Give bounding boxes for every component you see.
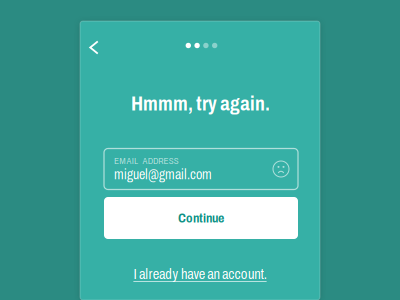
staticText: Continue	[178, 211, 224, 225]
staticText: Hmmm, try again.	[131, 92, 270, 115]
staticText: I already have an account.	[133, 266, 267, 282]
staticText: EMAIL ADDRESS	[114, 156, 179, 166]
staticText: miguel@gmail.com	[114, 167, 212, 182]
button[interactable]: Continue	[104, 197, 298, 239]
button[interactable]: Back	[80, 33, 108, 61]
button[interactable]: EMAIL ADDRESS	[104, 148, 298, 189]
button[interactable]: I already have an account.	[133, 266, 267, 282]
